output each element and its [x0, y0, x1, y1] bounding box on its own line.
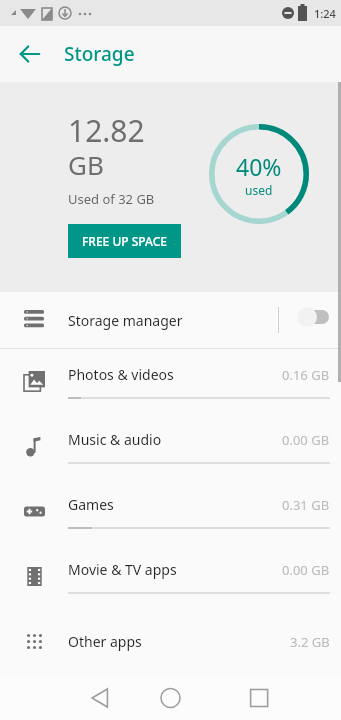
- button[interactable]: Back: [10, 34, 50, 74]
- button[interactable]: Movie & TV apps: [0, 544, 341, 609]
- button[interactable]: Music & audio: [0, 414, 341, 479]
- staticText: Movie & TV apps: [68, 560, 282, 579]
- staticText: Music & audio: [68, 430, 282, 449]
- staticText: Games: [68, 495, 282, 514]
- staticText: 12.82: [68, 110, 145, 151]
- staticText: GB: [68, 147, 104, 182]
- staticText: Used of 32 GB: [68, 190, 155, 208]
- staticText: Photos & videos: [68, 365, 282, 384]
- staticText: 0.00 GB: [282, 431, 330, 449]
- button[interactable]: FREE UP SPACE: [68, 224, 181, 258]
- staticText: 0.00 GB: [282, 561, 330, 579]
- staticText: used: [245, 182, 273, 198]
- staticText: 0.31 GB: [282, 496, 330, 514]
- staticText: FREE UP SPACE: [82, 233, 167, 249]
- staticText: 0.16 GB: [282, 366, 330, 384]
- staticText: Other apps: [68, 632, 290, 651]
- staticText: 40%: [236, 151, 282, 182]
- button[interactable]: Photos & videos: [0, 349, 341, 414]
- button[interactable]: Games: [0, 479, 341, 544]
- staticText: Storage manager: [68, 311, 278, 330]
- button[interactable]: Other apps: [0, 609, 341, 674]
- button[interactable]: Storage manager toggle: [279, 296, 341, 344]
- staticText: 3.2 GB: [290, 633, 330, 651]
- button[interactable]: Storage manager: [0, 292, 341, 348]
- staticText: 1:24: [314, 6, 336, 21]
- staticText: Storage: [64, 41, 135, 67]
